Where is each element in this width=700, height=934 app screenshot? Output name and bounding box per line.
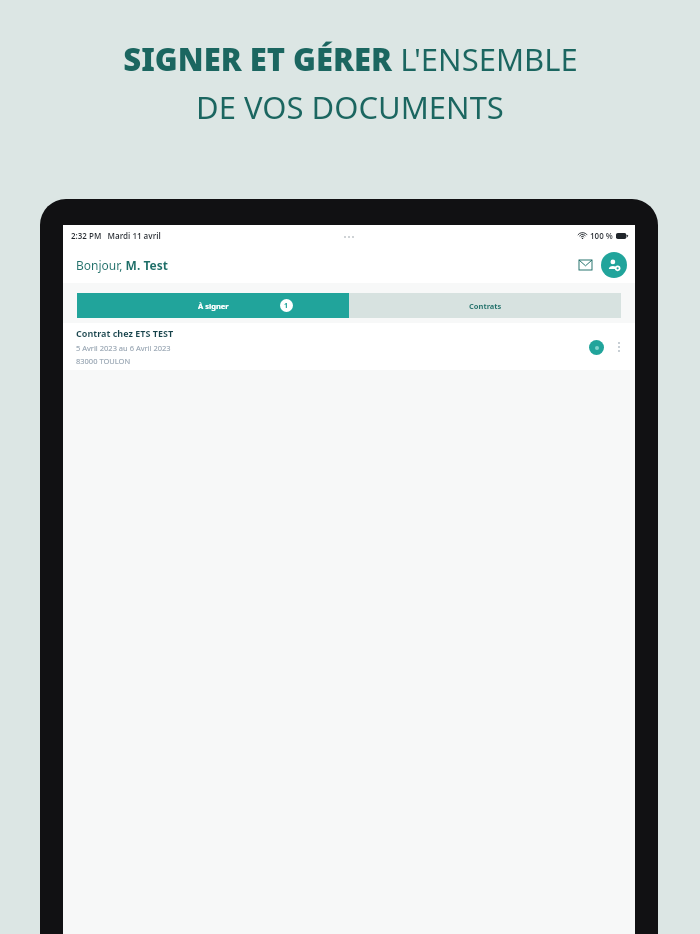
button[interactable]: Signer	[585, 336, 607, 358]
staticText: DE VOS DOCUMENTS	[196, 86, 504, 128]
staticText: 5 Avril 2023 au 6 Avril 2023	[76, 343, 171, 353]
staticText: 100 %	[590, 230, 613, 241]
staticText: À signer	[198, 301, 229, 311]
button[interactable]: Plus d'options	[607, 335, 631, 359]
staticText: 1	[284, 301, 289, 311]
staticText: 2:32 PM Mardi 11 avril	[71, 230, 161, 241]
staticText: Bonjour, M. Test	[76, 257, 168, 273]
button[interactable]: Profil	[601, 252, 627, 278]
staticText: SIGNER ET GÉRER L'ENSEMBLE	[123, 38, 578, 80]
button[interactable]: Contrat chez ETS TEST	[63, 323, 635, 370]
button[interactable]: Contrats	[349, 293, 621, 318]
button[interactable]: À signer	[77, 293, 349, 318]
staticText: Contrats	[469, 301, 502, 311]
staticText: Contrat chez ETS TEST	[76, 327, 174, 339]
button[interactable]: Messages	[572, 252, 598, 278]
staticText: 83000 TOULON	[76, 356, 131, 366]
